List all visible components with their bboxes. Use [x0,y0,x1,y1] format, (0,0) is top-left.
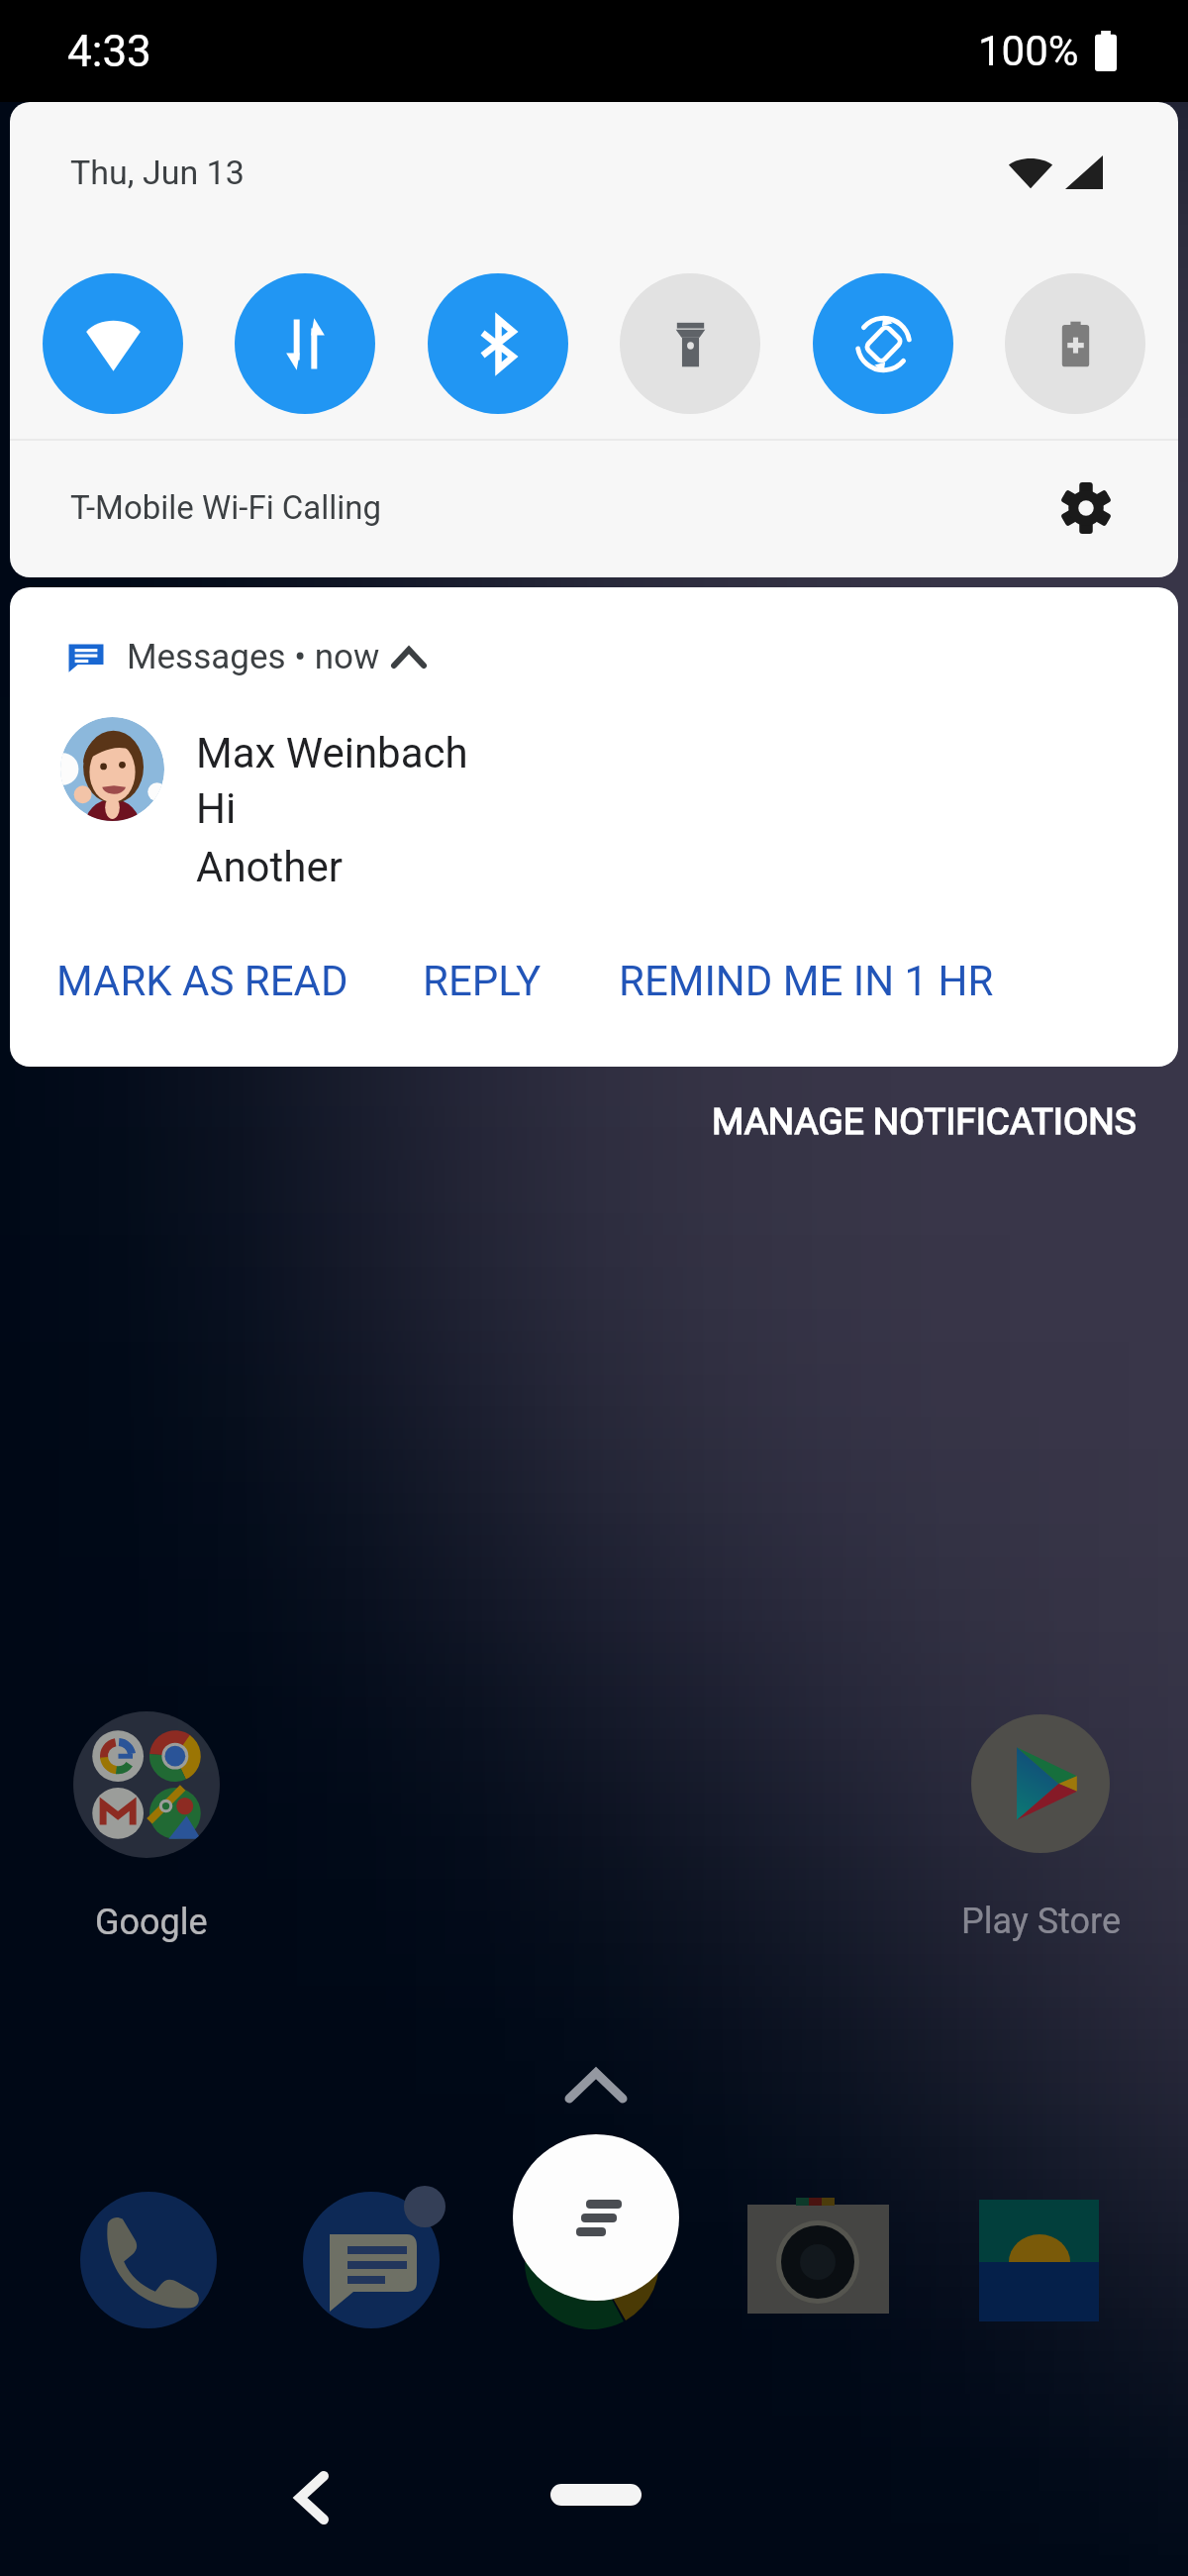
staticText: REMIND ME IN 1 HR [619,957,994,1005]
button[interactable]: REPLY [423,957,542,1005]
staticText: Hi [196,784,237,833]
button[interactable]: REMIND ME IN 1 HR [619,957,994,1005]
button[interactable]: Wi-Fi [43,273,183,414]
button[interactable]: Back [277,2463,346,2532]
button[interactable]: Google folder [73,1711,220,1858]
button[interactable]: Battery Saver [1005,273,1145,414]
button[interactable]: MARK AS READ [56,957,348,1005]
button[interactable]: Flashlight [620,273,760,414]
staticText: T-Mobile Wi-Fi Calling [70,488,382,527]
button[interactable]: Messages [282,2171,460,2349]
staticText: Thu, Jun 13 [70,153,245,192]
button[interactable]: Camera [729,2170,907,2348]
button[interactable]: Mobile data [235,273,375,414]
staticText: Another [196,843,343,891]
button[interactable]: Google [507,2151,685,2329]
staticText: MARK AS READ [56,957,348,1005]
staticText: Messages • now [127,637,380,677]
staticText: Max Weinbach [196,729,468,777]
button[interactable]: MANAGE NOTIFICATIONS [656,1073,1188,1151]
staticText: REPLY [423,957,542,1005]
staticText: 4:33 [67,26,151,77]
button[interactable]: Play Store [971,1714,1110,1853]
button[interactable]: Settings [1054,476,1118,540]
button[interactable]: Auto-rotate [813,273,953,414]
staticText: Play Store [961,1901,1122,1942]
button[interactable]: Home [550,2484,642,2506]
button[interactable]: Bluetooth [428,273,568,414]
staticText: 100% [978,27,1079,75]
button[interactable]: Photos [950,2171,1129,2349]
staticText: MANAGE NOTIFICATIONS [712,1100,1137,1143]
button[interactable]: Phone [59,2171,238,2349]
staticText: Google [95,1902,208,1943]
